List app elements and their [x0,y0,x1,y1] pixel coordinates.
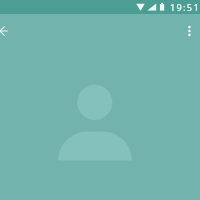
button[interactable]: Navigate up [0,14,16,50]
button[interactable]: More options [180,14,200,50]
staticText: 19:51 [170,1,200,14]
button[interactable]: Contact photo [0,50,200,200]
